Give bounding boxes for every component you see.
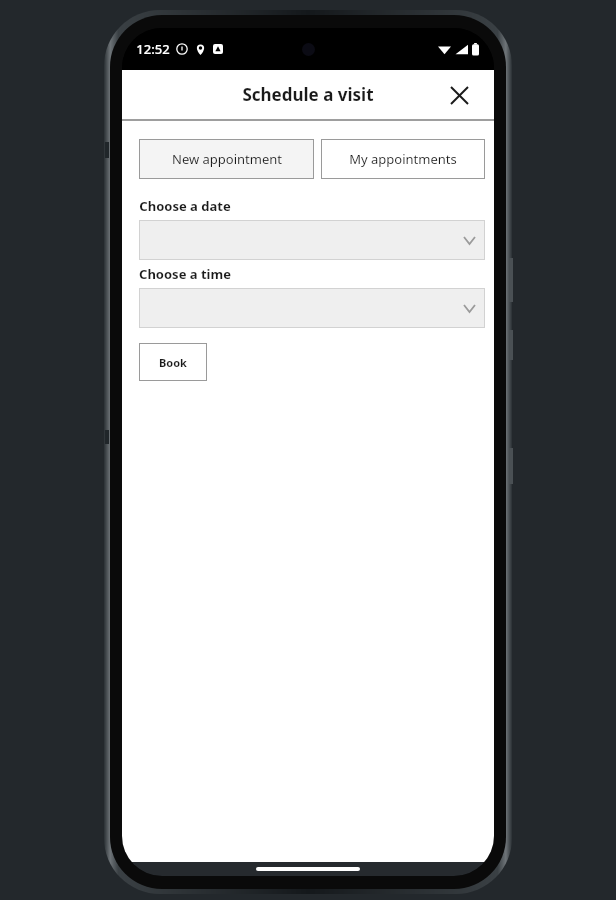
- staticText: Choose a time: [139, 265, 231, 283]
- staticText: Schedule a visit: [242, 83, 374, 106]
- staticText: New appointment: [172, 150, 282, 168]
- button[interactable]: Close: [442, 78, 476, 112]
- button[interactable]: Open selector: [139, 288, 485, 328]
- button[interactable]: New appointment: [139, 139, 314, 179]
- staticText: 12:52: [136, 40, 170, 58]
- button[interactable]: Open selector: [139, 220, 485, 260]
- button[interactable]: My appointments: [321, 139, 485, 179]
- staticText: My appointments: [349, 150, 457, 168]
- staticText: Choose a date: [139, 197, 231, 215]
- button[interactable]: Book: [139, 343, 207, 381]
- staticText: Book: [159, 355, 187, 370]
